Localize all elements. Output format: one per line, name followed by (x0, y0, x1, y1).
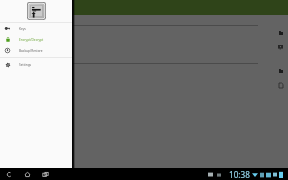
button[interactable]: Status (208, 169, 283, 180)
button[interactable]: Back (2, 168, 16, 180)
staticText: 10:38 (229, 169, 250, 180)
staticText: Backup/Restore (19, 49, 43, 53)
staticText: Settings (19, 63, 32, 67)
button[interactable]: Home (20, 168, 34, 180)
button[interactable]: Backup/Restore (0, 45, 72, 56)
staticText: Encrypt/Decrypt (19, 38, 44, 42)
button[interactable]: Recents (38, 168, 52, 180)
staticText: Keys (19, 27, 26, 31)
button[interactable]: Encrypt/Decrypt (0, 34, 72, 45)
button[interactable]: Keys (0, 23, 72, 34)
button[interactable]: Settings (0, 59, 72, 70)
